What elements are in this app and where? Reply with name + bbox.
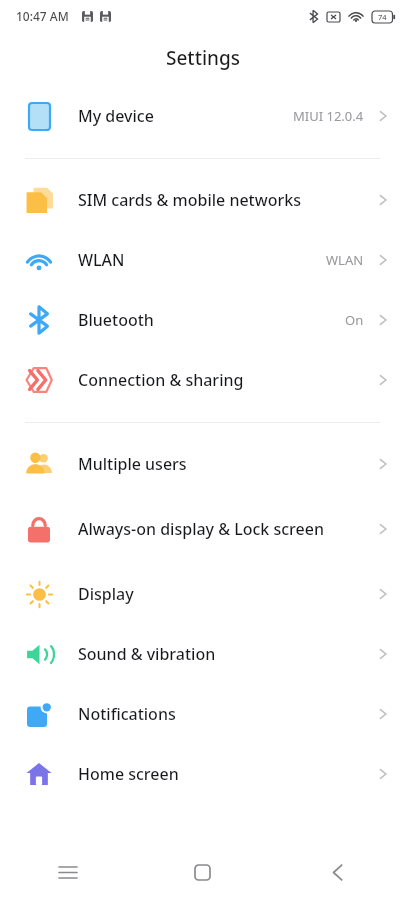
button[interactable]: Connection & sharing: [0, 350, 405, 410]
staticText: Connection & sharing: [78, 369, 367, 391]
button[interactable]: Home screen: [0, 744, 405, 804]
staticText: 74: [378, 12, 387, 22]
button[interactable]: My device: [0, 86, 405, 146]
staticText: WLAN: [326, 251, 364, 269]
staticText: MIUI 12.0.4: [293, 107, 364, 125]
button[interactable]: WLAN: [0, 230, 405, 290]
button[interactable]: SIM cards & mobile networks: [0, 170, 405, 230]
staticText: WLAN: [78, 249, 318, 271]
staticText: Notifications: [78, 703, 367, 725]
button[interactable]: Recents: [0, 845, 135, 900]
button[interactable]: Home: [135, 845, 270, 900]
staticText: 10:47 AM: [16, 8, 69, 24]
staticText: Bluetooth: [78, 309, 337, 331]
staticText: Sound & vibration: [78, 643, 367, 665]
button[interactable]: Bluetooth: [0, 290, 405, 350]
staticText: Always-on display & Lock screen: [78, 518, 367, 540]
button[interactable]: Display: [0, 564, 405, 624]
button[interactable]: Multiple users: [0, 434, 405, 494]
staticText: On: [345, 311, 364, 329]
staticText: My device: [78, 105, 285, 127]
staticText: Settings: [166, 45, 240, 71]
button[interactable]: Back: [270, 845, 405, 900]
button[interactable]: Sound & vibration: [0, 624, 405, 684]
staticText: SIM cards & mobile networks: [78, 189, 367, 211]
staticText: Multiple users: [78, 453, 367, 475]
button[interactable]: Always-on display & Lock screen: [0, 494, 405, 564]
staticText: Display: [78, 583, 367, 605]
staticText: Home screen: [78, 763, 367, 785]
button[interactable]: Notifications: [0, 684, 405, 744]
